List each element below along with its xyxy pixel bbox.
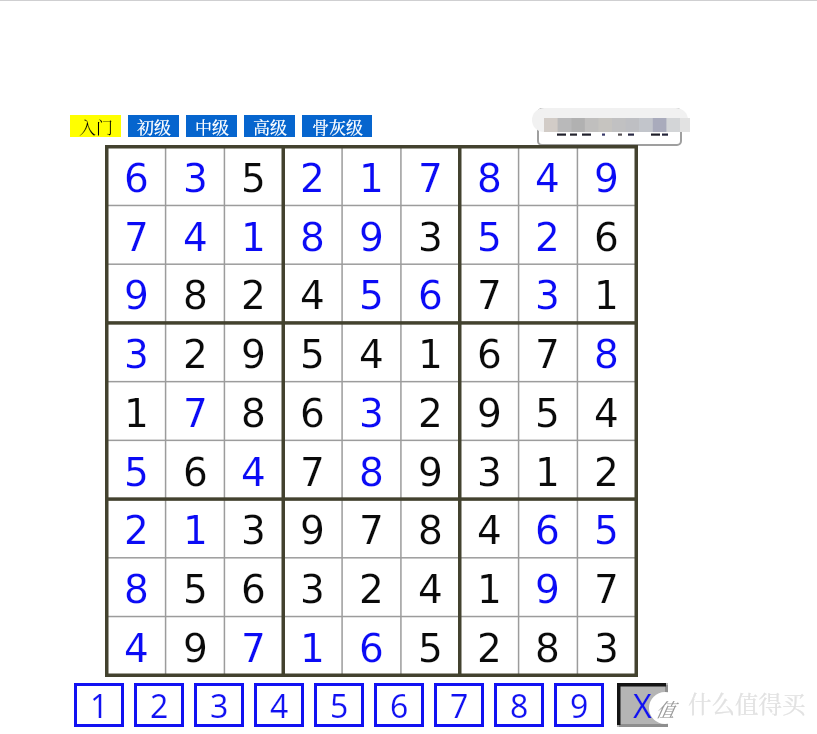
button[interactable]: 9 <box>107 264 166 323</box>
button[interactable]: 6 <box>166 441 225 500</box>
button[interactable]: 7 <box>434 683 484 727</box>
button[interactable]: 1 <box>577 264 636 323</box>
button[interactable]: 8 <box>518 617 577 676</box>
button[interactable]: 6 <box>283 382 342 441</box>
button[interactable]: 1 <box>107 382 166 441</box>
button[interactable]: 7 <box>577 558 636 617</box>
button[interactable]: 4 <box>283 264 342 323</box>
button[interactable]: 5 <box>314 683 364 727</box>
button[interactable]: 6 <box>374 683 424 727</box>
button[interactable]: 3 <box>401 206 460 265</box>
button[interactable]: 5 <box>107 441 166 500</box>
button[interactable]: 9 <box>518 558 577 617</box>
button[interactable]: 5 <box>518 382 577 441</box>
button[interactable]: 4 <box>107 617 166 676</box>
button[interactable]: 8 <box>166 264 225 323</box>
button[interactable]: 2 <box>166 323 225 382</box>
button[interactable]: 9 <box>577 147 636 206</box>
button[interactable]: 6 <box>342 617 401 676</box>
button[interactable]: 1 <box>166 499 225 558</box>
button[interactable]: 9 <box>224 323 283 382</box>
button[interactable]: 9 <box>342 206 401 265</box>
staticText: 5 <box>183 567 208 612</box>
button[interactable]: 7 <box>401 147 460 206</box>
button[interactable]: 入门 <box>70 115 121 137</box>
button[interactable]: 9 <box>166 617 225 676</box>
button[interactable]: 1 <box>460 558 519 617</box>
button[interactable]: 高级 <box>244 115 295 137</box>
button[interactable]: 3 <box>460 441 519 500</box>
button[interactable]: 7 <box>342 499 401 558</box>
button[interactable]: 6 <box>401 264 460 323</box>
button[interactable]: 7 <box>460 264 519 323</box>
button[interactable]: 8 <box>107 558 166 617</box>
button[interactable]: 4 <box>254 683 304 727</box>
button[interactable]: 4 <box>224 441 283 500</box>
button[interactable]: 2 <box>401 382 460 441</box>
button[interactable]: 3 <box>518 264 577 323</box>
button[interactable]: 3 <box>283 558 342 617</box>
button[interactable]: 9 <box>401 441 460 500</box>
button[interactable]: 6 <box>518 499 577 558</box>
button[interactable]: 2 <box>518 206 577 265</box>
button[interactable]: 5 <box>342 264 401 323</box>
button[interactable]: 8 <box>460 147 519 206</box>
staticText: 9 <box>477 391 502 436</box>
button[interactable]: 3 <box>194 683 244 727</box>
button[interactable]: 6 <box>577 206 636 265</box>
button[interactable]: 3 <box>342 382 401 441</box>
button[interactable]: 3 <box>224 499 283 558</box>
button[interactable]: 3 <box>107 323 166 382</box>
button[interactable]: 2 <box>224 264 283 323</box>
button[interactable]: 5 <box>166 558 225 617</box>
button[interactable]: 2 <box>460 617 519 676</box>
button[interactable]: 初级 <box>128 115 179 137</box>
button[interactable]: 1 <box>74 683 124 727</box>
button[interactable]: 4 <box>342 323 401 382</box>
button[interactable]: 9 <box>460 382 519 441</box>
button[interactable]: 5 <box>401 617 460 676</box>
button[interactable]: 7 <box>283 441 342 500</box>
button[interactable]: 8 <box>577 323 636 382</box>
button[interactable]: Clear cell <box>617 683 668 727</box>
button[interactable]: 1 <box>518 441 577 500</box>
button[interactable]: 6 <box>224 558 283 617</box>
button[interactable]: 5 <box>460 206 519 265</box>
button[interactable]: 5 <box>283 323 342 382</box>
button[interactable]: 8 <box>401 499 460 558</box>
button[interactable]: 2 <box>134 683 184 727</box>
button[interactable]: 4 <box>401 558 460 617</box>
button[interactable]: 2 <box>342 558 401 617</box>
button[interactable]: 4 <box>460 499 519 558</box>
button[interactable]: 8 <box>342 441 401 500</box>
button[interactable]: 2 <box>107 499 166 558</box>
button[interactable]: 3 <box>166 147 225 206</box>
button[interactable]: 8 <box>494 683 544 727</box>
button[interactable]: 6 <box>460 323 519 382</box>
button[interactable]: 4 <box>577 382 636 441</box>
button[interactable]: 1 <box>224 206 283 265</box>
button[interactable]: 5 <box>224 147 283 206</box>
button[interactable]: 4 <box>166 206 225 265</box>
button[interactable]: 骨灰级 <box>302 115 372 137</box>
button[interactable]: 6 <box>107 147 166 206</box>
button[interactable]: 7 <box>107 206 166 265</box>
button[interactable]: 9 <box>554 683 604 727</box>
button[interactable]: 2 <box>577 441 636 500</box>
button[interactable]: 5 <box>577 499 636 558</box>
staticText: 值 <box>655 695 675 722</box>
button[interactable]: 1 <box>401 323 460 382</box>
button[interactable]: 8 <box>283 206 342 265</box>
button[interactable]: 2 <box>283 147 342 206</box>
button[interactable]: 7 <box>166 382 225 441</box>
button[interactable]: 4 <box>518 147 577 206</box>
staticText: 6 <box>183 450 208 495</box>
button[interactable]: 7 <box>518 323 577 382</box>
button[interactable]: 3 <box>577 617 636 676</box>
button[interactable]: 7 <box>224 617 283 676</box>
button[interactable]: 8 <box>224 382 283 441</box>
button[interactable]: 1 <box>283 617 342 676</box>
button[interactable]: 9 <box>283 499 342 558</box>
button[interactable]: 1 <box>342 147 401 206</box>
button[interactable]: 中级 <box>186 115 237 137</box>
